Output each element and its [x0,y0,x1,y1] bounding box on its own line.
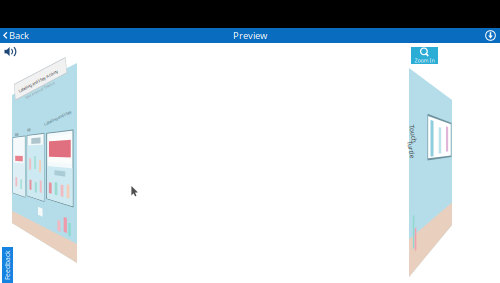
staticText: Labeling and I-Spy [43,122,73,127]
button[interactable]: Play audio [4,46,21,58]
staticText: Preview [233,29,267,42]
staticText: Turtle [414,140,432,149]
button[interactable]: Download [483,28,498,43]
button[interactable]: Zoom In [411,47,438,64]
staticText: Sea Animal Theme [24,95,57,101]
staticText: Feedback [0,261,22,269]
staticText: Touch [416,124,434,133]
button[interactable]: Back [0,28,35,43]
staticText: Zoom In [414,57,434,64]
staticText: Labeling and I-Spy Activity [17,89,61,94]
button[interactable]: Feedback [2,247,13,283]
staticText: Back [9,29,29,42]
